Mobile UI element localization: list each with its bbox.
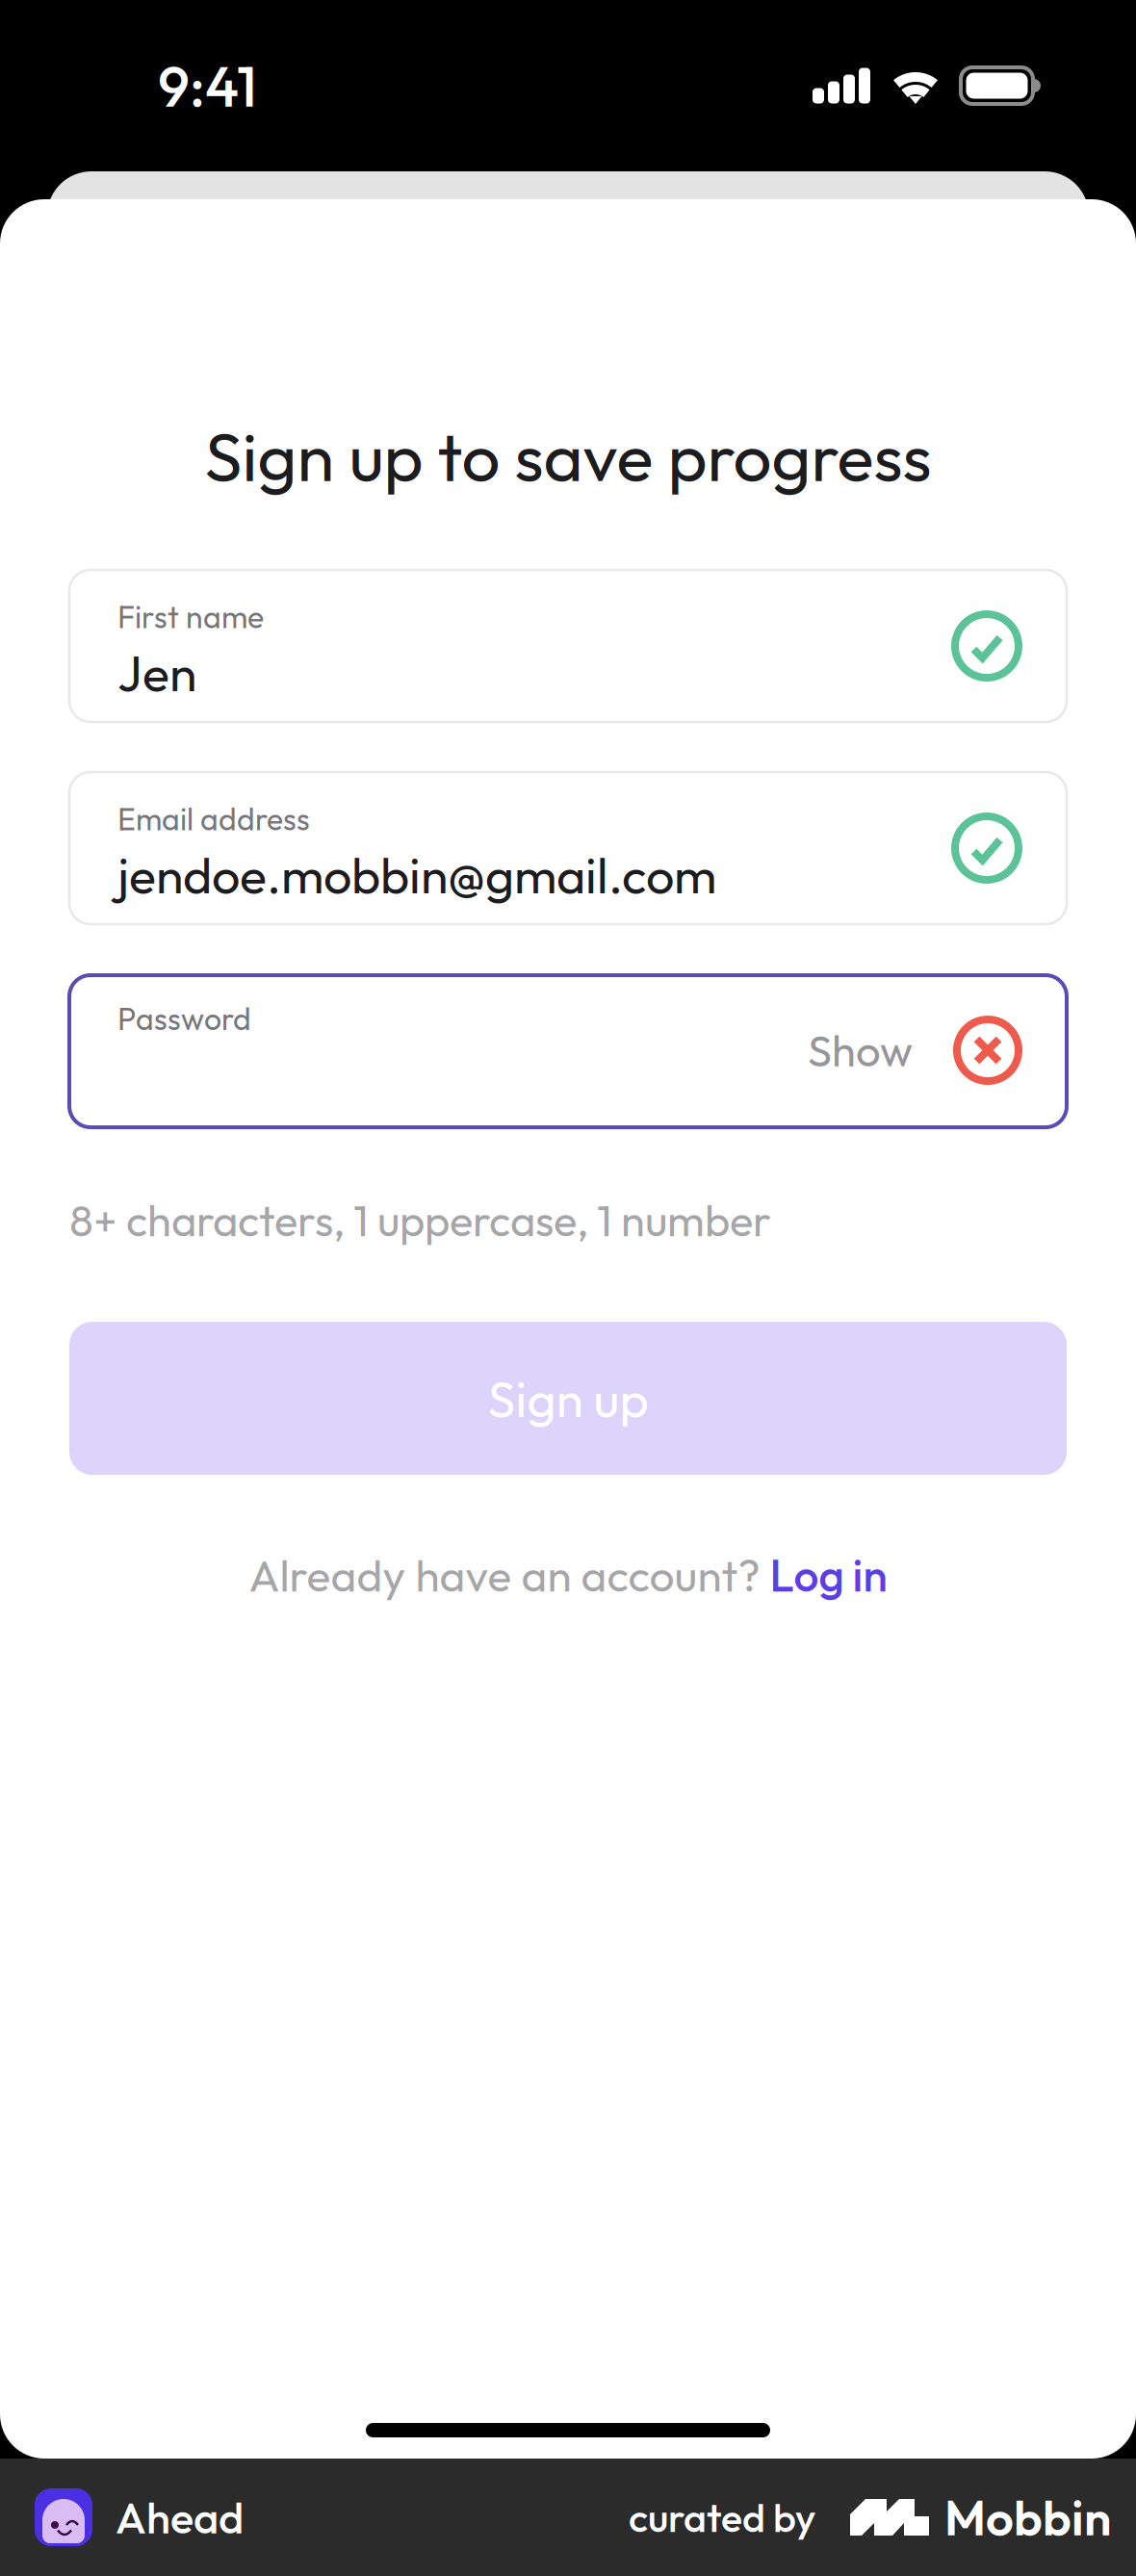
staticText: Email address: [117, 800, 310, 838]
button[interactable]: First name: [69, 570, 1067, 722]
button[interactable]: Log in: [770, 1547, 887, 1603]
staticText: 8+ characters, 1 uppercase, 1 number: [69, 1193, 771, 1248]
staticText: Mobbin: [944, 2487, 1111, 2548]
staticText: jendoe.mobbin@gmail.com: [117, 843, 716, 906]
staticText: First name: [117, 597, 264, 636]
staticText: Log in: [770, 1547, 887, 1603]
staticText: Show: [808, 1023, 913, 1078]
staticText: Jen: [117, 641, 196, 704]
button[interactable]: Sign up: [69, 1322, 1067, 1475]
staticText: Already have an account?: [249, 1547, 770, 1603]
staticText: curated by: [629, 2492, 815, 2542]
staticText: Ahead: [116, 2490, 244, 2545]
staticText: Password: [117, 999, 251, 1038]
button[interactable]: Password: [69, 975, 1067, 1127]
button[interactable]: Email address: [69, 772, 1067, 924]
staticText: Sign up to save progress: [205, 413, 931, 499]
staticText: 9:41: [158, 50, 257, 121]
staticText: Sign up: [488, 1367, 648, 1430]
